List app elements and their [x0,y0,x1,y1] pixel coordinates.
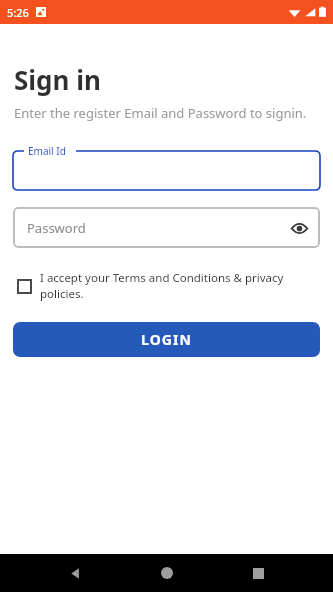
button[interactable]: Show password [286,215,312,241]
button[interactable]: LOGIN [13,322,320,357]
staticText: Sign in [14,62,101,97]
staticText: I accept your Terms and Conditions & pri… [40,270,316,302]
staticText: LOGIN [141,330,193,349]
button[interactable]: Recent apps [241,556,275,590]
staticText: Password [27,219,86,237]
button[interactable]: Home [150,556,184,590]
button[interactable]: Email Id [13,144,320,190]
staticText: 5:26 [7,5,29,20]
button[interactable]: Back [58,556,92,590]
button[interactable]: I accept your Terms and Conditions & pri… [17,270,316,302]
staticText: Email Id [28,144,66,158]
staticText: Enter the register Email and Password to… [14,104,307,122]
button[interactable]: Password [13,207,320,248]
